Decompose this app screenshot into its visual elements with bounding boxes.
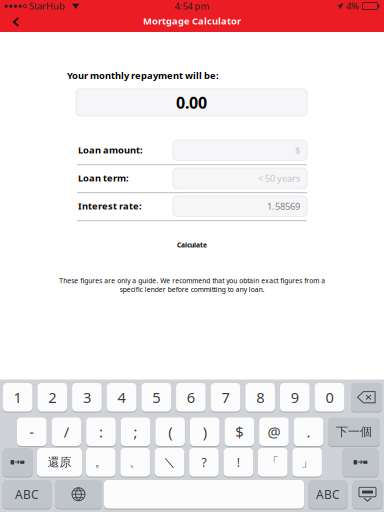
staticText: 8 bbox=[256, 387, 264, 407]
button[interactable]: 7 bbox=[211, 383, 240, 411]
button[interactable]: Calculate bbox=[162, 238, 222, 252]
staticText: 7 bbox=[221, 387, 229, 407]
button[interactable]: 2 bbox=[37, 383, 67, 411]
button[interactable]: 、 bbox=[120, 448, 150, 476]
staticText: - bbox=[29, 422, 34, 441]
staticText: ABC bbox=[316, 486, 340, 502]
button[interactable]: Back bbox=[0, 0, 384, 512]
staticText: Calculate bbox=[177, 241, 207, 249]
staticText: StarHub bbox=[29, 0, 65, 12]
button[interactable]: : bbox=[86, 417, 116, 446]
staticText: 0.00 bbox=[176, 92, 207, 113]
staticText: 5 bbox=[152, 387, 160, 407]
staticText: @ bbox=[267, 422, 280, 441]
staticText: 4 bbox=[117, 387, 125, 407]
staticText: 0 bbox=[325, 387, 333, 407]
staticText: Interest rate: bbox=[78, 200, 142, 212]
staticText: 「 bbox=[267, 455, 279, 470]
button[interactable]: Hide keyboard bbox=[352, 480, 382, 508]
button[interactable]: 4 bbox=[107, 383, 136, 411]
staticText: ; bbox=[134, 422, 138, 441]
staticText: . bbox=[307, 422, 311, 441]
staticText: $ bbox=[295, 144, 300, 156]
button[interactable]: Input mode bbox=[342, 448, 378, 476]
button[interactable]: ? bbox=[189, 448, 219, 476]
button[interactable]: Next keyboard bbox=[55, 480, 102, 508]
staticText: / bbox=[64, 422, 69, 441]
staticText: 4:54 pm bbox=[174, 0, 209, 12]
button[interactable]: 。 bbox=[86, 448, 115, 476]
staticText: ! bbox=[237, 454, 240, 470]
button[interactable]: . bbox=[294, 417, 323, 446]
staticText: 。 bbox=[95, 455, 107, 470]
staticText: 還原 bbox=[47, 455, 71, 470]
staticText: : bbox=[99, 422, 103, 441]
button[interactable]: ABC bbox=[2, 480, 51, 508]
staticText: Loan amount: bbox=[78, 144, 143, 156]
button[interactable]: @ bbox=[259, 417, 289, 446]
button[interactable]: 6 bbox=[176, 383, 206, 411]
staticText: Mortgage Calculator bbox=[143, 15, 241, 27]
button[interactable]: ! bbox=[224, 448, 253, 476]
staticText: 、 bbox=[129, 455, 141, 470]
staticText: Loan term: bbox=[78, 172, 129, 184]
staticText: 下一個 bbox=[336, 424, 372, 439]
button[interactable]: 」 bbox=[292, 448, 322, 476]
button[interactable]: ＼ bbox=[155, 448, 184, 476]
button[interactable]: ; bbox=[121, 417, 150, 446]
staticText: ( bbox=[168, 422, 172, 441]
button[interactable]: 下一個 bbox=[328, 417, 380, 446]
staticText: 4% bbox=[346, 0, 359, 12]
staticText: ? bbox=[201, 454, 206, 470]
button[interactable]: 9 bbox=[280, 383, 310, 411]
staticText: < 50 years bbox=[258, 172, 300, 184]
staticText: ABC bbox=[15, 486, 39, 502]
button[interactable]: 還原 bbox=[37, 448, 82, 476]
staticText: These figures are only a guide. We recom… bbox=[59, 276, 325, 294]
staticText: ) bbox=[203, 422, 207, 441]
staticText: 1 bbox=[14, 387, 22, 407]
staticText: ＼ bbox=[164, 455, 176, 470]
button[interactable]: 8 bbox=[245, 383, 275, 411]
staticText: 6 bbox=[187, 387, 195, 407]
staticText: 」 bbox=[301, 455, 313, 470]
button[interactable]: 1 bbox=[3, 383, 32, 411]
staticText: $ bbox=[235, 422, 243, 441]
button[interactable]: Input mode bbox=[2, 448, 32, 476]
button[interactable]: 5 bbox=[141, 383, 171, 411]
button[interactable]: ) bbox=[190, 417, 219, 446]
staticText: Your monthly repayment will be: bbox=[67, 69, 219, 82]
button[interactable]: - bbox=[17, 417, 46, 446]
button[interactable]: / bbox=[52, 417, 81, 446]
staticText: 1.58569 bbox=[267, 200, 300, 212]
button[interactable]: 「 bbox=[258, 448, 287, 476]
button[interactable]: Delete bbox=[351, 383, 382, 411]
staticText: 2 bbox=[48, 387, 56, 407]
button[interactable]: 3 bbox=[72, 383, 102, 411]
button[interactable]: $ bbox=[225, 417, 254, 446]
staticText: 9 bbox=[291, 387, 299, 407]
button[interactable]: 0 bbox=[315, 383, 344, 411]
staticText: 3 bbox=[83, 387, 91, 407]
button[interactable]: ABC bbox=[308, 480, 347, 508]
button[interactable]: ( bbox=[155, 417, 185, 446]
